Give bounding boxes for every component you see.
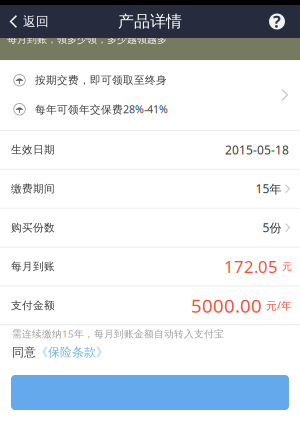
staticText: 5份 [262, 219, 281, 236]
button[interactable]: 缴费期间 [0, 170, 300, 208]
staticText: 每年可领年交保费28%-41% [35, 102, 168, 116]
staticText: 5000.00 [191, 293, 262, 318]
staticText: 产品详情 [118, 11, 182, 32]
button[interactable]: 帮助 [262, 5, 300, 38]
button[interactable]: 生效日期 [0, 131, 300, 169]
staticText: 172.05 [224, 255, 278, 278]
staticText: 购买份数 [11, 221, 55, 234]
staticText: 支付金额 [11, 299, 55, 312]
staticText: 每月到账，领多少领，多少越领越多 [7, 33, 167, 46]
staticText: 元 [282, 260, 292, 273]
staticText: 每月到账 [11, 260, 55, 273]
staticText: 15年 [255, 180, 281, 197]
staticText: 需连续缴纳15年，每月到账金额自动转入支付宝 [12, 327, 224, 340]
staticText: 2015-05-18 [225, 142, 289, 158]
staticText: 缴费期间 [11, 182, 55, 195]
staticText: 同意 [12, 345, 36, 360]
staticText: 《保险条款》 [36, 345, 108, 360]
button[interactable] [0, 375, 300, 410]
staticText: ? [273, 11, 281, 32]
staticText: 生效日期 [11, 143, 55, 156]
button[interactable]: 购买份数 [0, 208, 300, 247]
staticText: 按期交费，即可领取至终身 [35, 73, 167, 87]
button[interactable]: 同意 [0, 342, 300, 362]
staticText: 返回 [23, 13, 49, 29]
staticText: 元/年 [266, 298, 292, 313]
button[interactable]: 返回 [0, 5, 57, 38]
